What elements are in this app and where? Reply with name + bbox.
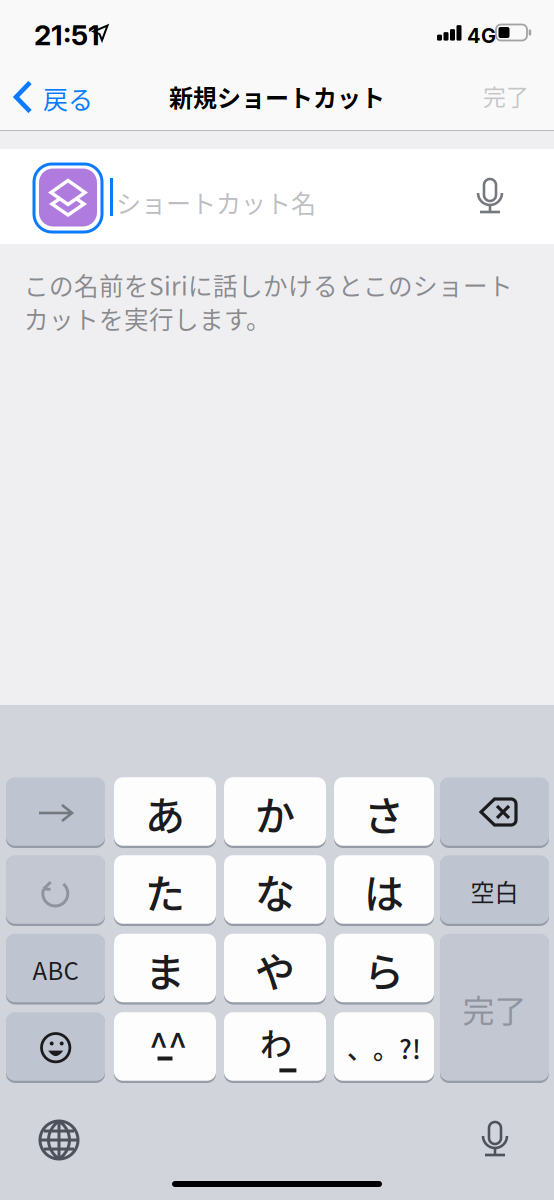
staticText: ABC — [32, 952, 78, 987]
button[interactable]: 空白 — [440, 856, 549, 926]
staticText: ^^ — [149, 1019, 187, 1068]
staticText: あ — [145, 784, 185, 842]
staticText: た — [145, 862, 185, 920]
button[interactable]: な — [224, 856, 326, 926]
staticText: この名前をSiriに話しかけるとこのショートカットを実行します。 — [24, 267, 513, 336]
staticText: さ — [364, 784, 404, 842]
button[interactable]: ^^ — [114, 1013, 216, 1083]
staticText: ショートカット名 — [116, 184, 316, 220]
staticText: 完了 — [462, 986, 526, 1032]
staticText: は — [364, 862, 404, 920]
button[interactable] — [6, 856, 105, 926]
staticText: 空白 — [470, 874, 518, 908]
staticText: 、。?! — [347, 1029, 421, 1067]
button[interactable] — [440, 778, 549, 848]
button[interactable]: あ — [114, 778, 216, 848]
staticText: ま — [145, 940, 185, 998]
button[interactable] — [6, 1013, 105, 1083]
staticText: 完了 — [483, 79, 529, 112]
button[interactable]: 完了 — [440, 934, 549, 1083]
staticText: 21:51 — [34, 18, 100, 52]
button[interactable]: 音声入力 — [469, 1114, 521, 1166]
button[interactable]: キーボード切替 — [31, 1112, 87, 1168]
staticText: な — [255, 862, 295, 920]
staticText: 戻る — [43, 80, 93, 116]
staticText: 新規ショートカット — [169, 79, 385, 114]
button[interactable]: ABC — [6, 934, 105, 1004]
button[interactable]: わ — [224, 1013, 326, 1083]
button[interactable]: 音声入力 — [464, 171, 516, 223]
staticText: か — [255, 784, 295, 842]
staticText: や — [255, 940, 295, 998]
button[interactable]: か — [224, 778, 326, 848]
button[interactable]: 完了 — [460, 70, 554, 124]
staticText: わ — [260, 1019, 292, 1065]
button[interactable]: さ — [334, 778, 434, 848]
button[interactable] — [6, 778, 105, 848]
button[interactable]: は — [334, 856, 434, 926]
button[interactable]: ら — [334, 934, 434, 1004]
staticText: 4G — [467, 23, 496, 48]
button[interactable]: 戻る — [0, 70, 110, 124]
button[interactable]: や — [224, 934, 326, 1004]
button[interactable]: 、。?! — [334, 1013, 434, 1083]
staticText: ら — [364, 940, 404, 998]
button[interactable]: た — [114, 856, 216, 926]
button[interactable]: ま — [114, 934, 216, 1004]
